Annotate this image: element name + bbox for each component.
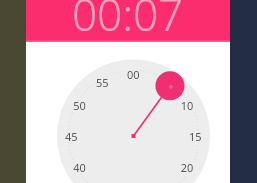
button[interactable]: Timer dial [26, 42, 230, 183]
button[interactable] [26, 0, 230, 42]
